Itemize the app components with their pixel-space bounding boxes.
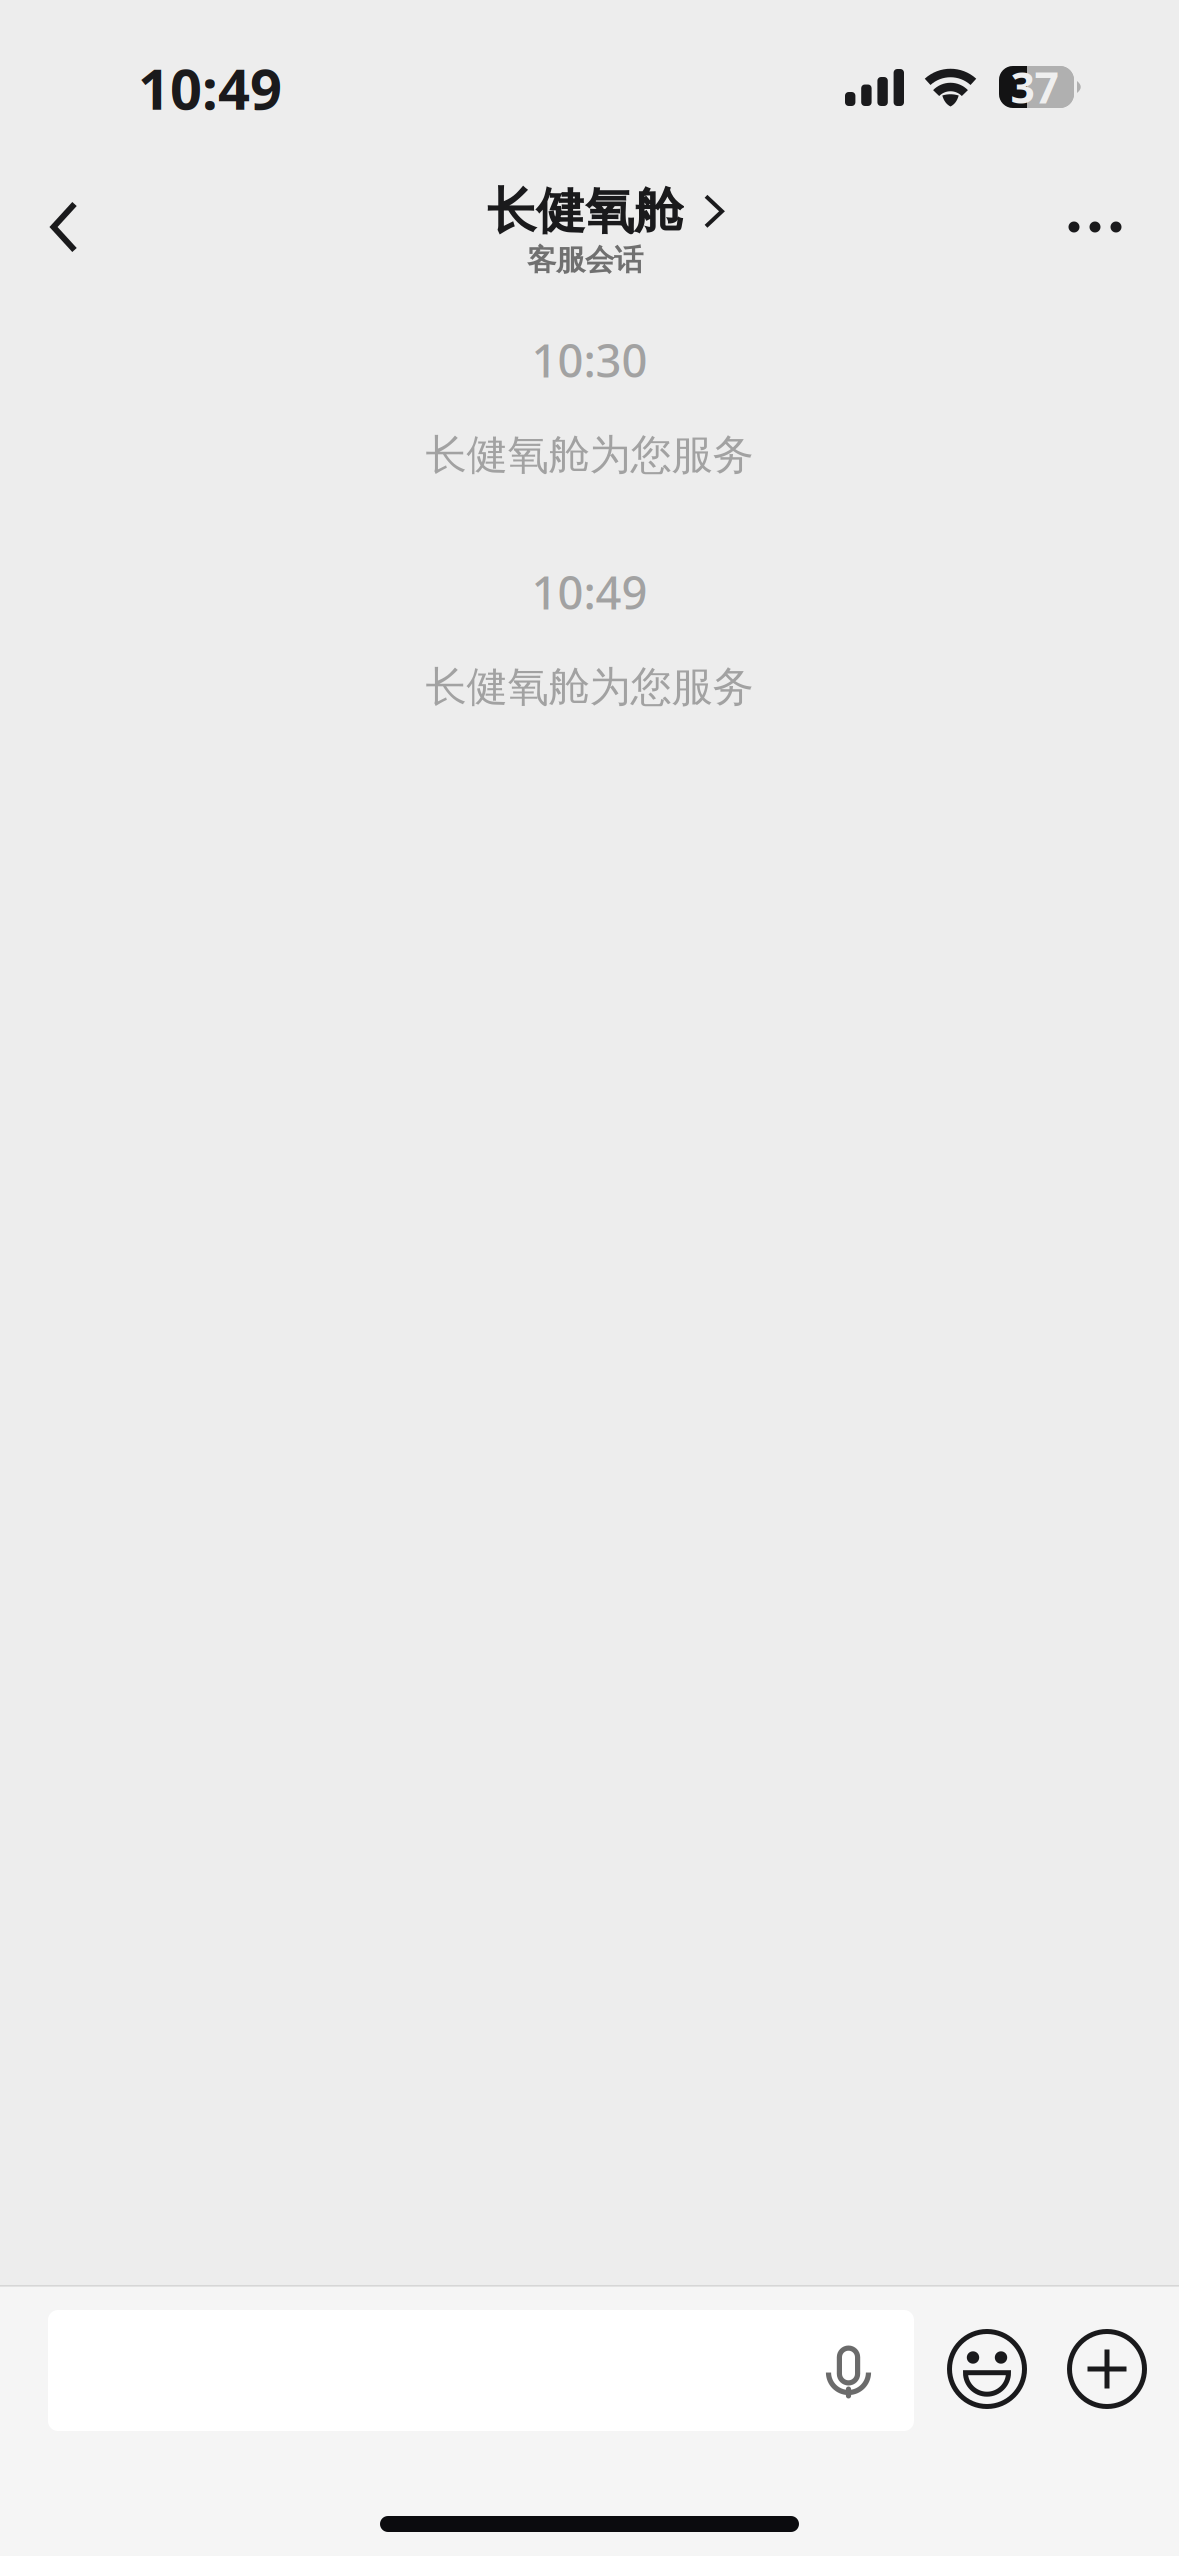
button[interactable]: Emoji: [947, 2329, 1027, 2409]
staticText: 10:30: [531, 330, 647, 390]
button[interactable]: More actions: [1067, 2329, 1147, 2409]
staticText: 10:49: [138, 51, 282, 125]
staticText: 长健氧舱为您服务: [425, 662, 753, 712]
staticText: 37: [1010, 59, 1058, 115]
staticText: 10:49: [531, 562, 647, 622]
staticText: 长健氧舱: [487, 181, 683, 242]
staticText: 客服会话: [527, 242, 643, 278]
button[interactable]: More: [1045, 177, 1145, 277]
button[interactable]: Message input field, voice input: [48, 2310, 914, 2431]
button[interactable]: Back: [14, 177, 114, 277]
button[interactable]: 长健氧舱: [380, 175, 800, 285]
staticText: 长健氧舱为您服务: [425, 430, 753, 480]
